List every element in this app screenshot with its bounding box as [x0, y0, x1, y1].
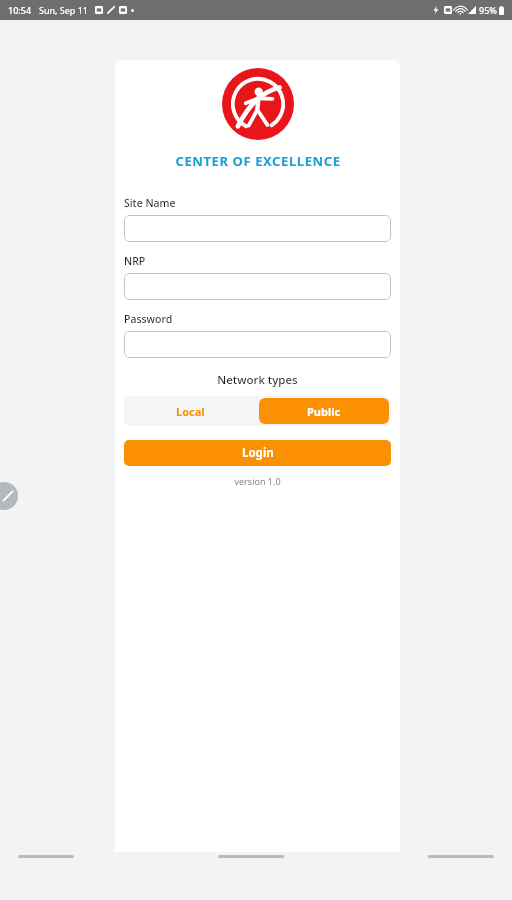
staticText: 10:54 — [8, 4, 32, 16]
staticText: Sun, Sep 11 — [39, 4, 89, 16]
button[interactable]: Login — [124, 440, 391, 466]
staticText: Login — [242, 445, 274, 461]
button[interactable] — [124, 215, 391, 242]
button[interactable]: Navigation — [428, 855, 494, 858]
button[interactable] — [124, 273, 391, 300]
button[interactable]: Edit — [0, 482, 18, 510]
button[interactable]: Local — [124, 396, 257, 426]
staticText: Site Name — [124, 196, 176, 210]
button[interactable]: Navigation — [218, 855, 284, 858]
button[interactable]: Navigation — [18, 855, 74, 858]
staticText: Public — [307, 404, 341, 419]
staticText: Network types — [124, 372, 391, 388]
staticText: CENTER OF EXCELLENCE — [175, 152, 341, 170]
staticText: Password — [124, 312, 173, 326]
staticText: NRP — [124, 254, 146, 268]
button[interactable]: Public — [259, 398, 389, 424]
button[interactable] — [124, 331, 391, 358]
staticText: Local — [176, 404, 205, 419]
staticText: 95% — [479, 4, 497, 16]
staticText: version 1.0 — [124, 475, 391, 487]
